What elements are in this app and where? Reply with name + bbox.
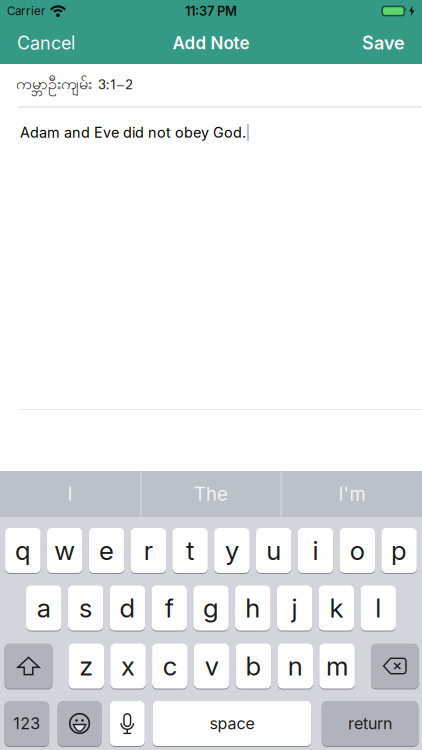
button[interactable]: Delete [371, 643, 419, 688]
staticText: h [245, 592, 260, 624]
staticText: i [312, 535, 318, 566]
staticText: space [209, 714, 254, 733]
button[interactable]: w [47, 528, 82, 573]
button[interactable]: Cancel [17, 32, 75, 54]
button[interactable]: g [193, 585, 229, 630]
staticText: u [266, 535, 281, 566]
staticText: ကမ္ဘာဦးကျမ်း 3:1–2 [16, 73, 133, 97]
button[interactable]: x [110, 643, 146, 688]
staticText: x [121, 650, 135, 682]
button[interactable]: j [277, 585, 312, 630]
staticText: w [54, 535, 75, 566]
button[interactable]: Save [362, 32, 405, 54]
staticText: Cancel [17, 32, 75, 54]
button[interactable]: 123 [4, 701, 49, 746]
staticText: l [375, 592, 381, 624]
button[interactable]: The [141, 471, 280, 517]
staticText: c [163, 650, 177, 682]
staticText: d [119, 592, 135, 624]
button[interactable]: Shift [4, 643, 52, 688]
button[interactable]: Dictate [110, 701, 145, 746]
staticText: 11:37 PM [185, 3, 237, 19]
staticText: m [326, 650, 348, 682]
staticText: s [79, 592, 92, 624]
staticText: q [15, 535, 31, 566]
button[interactable]: a [26, 585, 62, 630]
staticText: Adam and Eve did not obey God. [20, 124, 246, 141]
staticText: Carrier [7, 4, 45, 18]
staticText: I [67, 483, 72, 505]
staticText: y [225, 535, 239, 566]
button[interactable]: u [256, 528, 291, 573]
staticText: 123 [13, 714, 40, 733]
staticText: o [350, 535, 365, 566]
button[interactable]: e [89, 528, 124, 573]
button[interactable]: Emoji [58, 701, 101, 746]
staticText: return [348, 714, 392, 733]
staticText: r [144, 535, 153, 566]
button[interactable]: r [131, 528, 166, 573]
button[interactable]: return [322, 701, 418, 746]
button[interactable]: y [214, 528, 250, 573]
button[interactable]: k [319, 585, 354, 630]
staticText: p [391, 535, 407, 566]
staticText: n [288, 650, 303, 682]
button[interactable]: v [194, 643, 229, 688]
staticText: t [186, 535, 194, 566]
button[interactable]: z [68, 643, 104, 688]
button[interactable]: m [319, 643, 355, 688]
button[interactable]: f [151, 585, 187, 630]
staticText: j [292, 592, 298, 624]
staticText: I'm [338, 483, 365, 505]
button[interactable]: l [360, 585, 396, 630]
button[interactable]: h [235, 585, 271, 630]
staticText: v [205, 650, 219, 682]
button[interactable]: i [298, 528, 333, 573]
button[interactable]: c [152, 643, 188, 688]
button[interactable]: s [68, 585, 103, 630]
button[interactable]: p [381, 528, 417, 573]
staticText: z [79, 650, 93, 682]
staticText: Add Note [172, 33, 249, 53]
staticText: g [203, 592, 219, 624]
button[interactable]: t [172, 528, 208, 573]
button[interactable]: n [277, 643, 313, 688]
staticText: The [194, 483, 228, 505]
button[interactable]: q [5, 528, 41, 573]
staticText: f [165, 592, 174, 624]
staticText: Save [362, 32, 405, 54]
staticText: e [99, 535, 114, 566]
staticText: b [245, 650, 261, 682]
button[interactable]: b [236, 643, 271, 688]
button[interactable]: o [340, 528, 375, 573]
button[interactable]: space [153, 701, 311, 746]
button[interactable]: I'm [282, 471, 422, 517]
staticText: a [37, 592, 51, 624]
staticText: k [329, 592, 343, 624]
button[interactable]: d [110, 585, 145, 630]
